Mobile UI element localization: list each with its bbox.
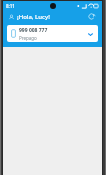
staticText: ¡Hola, Lucy! [17,13,50,21]
button[interactable]: ¡Hola, Lucy! [8,13,50,21]
staticText: 999 008 777 [19,27,48,34]
staticText: Prepago [19,35,37,41]
button[interactable]: Refresh [86,11,97,22]
staticText: 8:11 [6,3,15,9]
button[interactable]: 999 008 777 [7,25,98,42]
button[interactable]: Expand account [86,30,94,38]
